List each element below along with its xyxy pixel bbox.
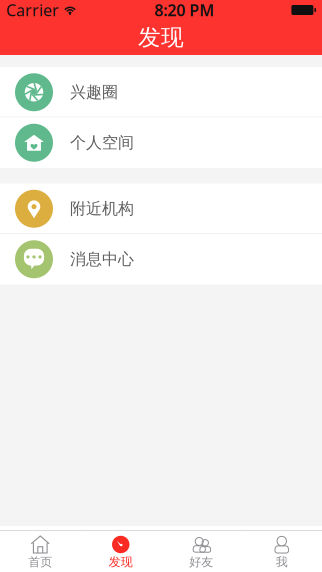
staticText: 个人空间: [70, 133, 134, 153]
button[interactable]: 兴趣圈: [0, 67, 322, 117]
staticText: 消息中心: [70, 249, 134, 269]
staticText: 8:20 PM: [154, 0, 214, 21]
staticText: 我: [276, 555, 288, 569]
staticText: 首页: [28, 555, 52, 569]
button[interactable]: 附近机构: [0, 183, 322, 234]
button[interactable]: 发现: [80, 530, 161, 572]
staticText: 好友: [189, 555, 213, 569]
staticText: 兴趣圈: [70, 82, 118, 102]
staticText: 发现: [138, 24, 184, 51]
staticText: Carrier: [6, 0, 59, 21]
button[interactable]: 好友: [161, 530, 241, 572]
staticText: 发现: [109, 555, 133, 569]
button[interactable]: 消息中心: [0, 234, 322, 284]
button[interactable]: 个人空间: [0, 117, 322, 168]
button[interactable]: 首页: [0, 530, 80, 572]
staticText: 附近机构: [70, 199, 134, 219]
button[interactable]: 我: [241, 530, 322, 572]
